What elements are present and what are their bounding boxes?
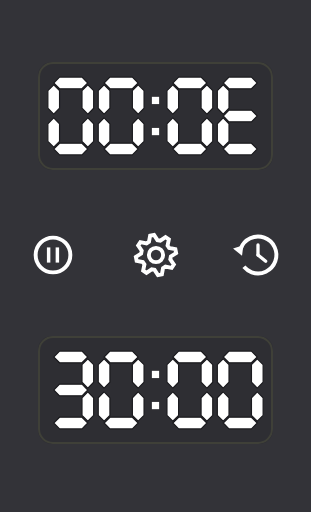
button[interactable]: Reset bbox=[235, 232, 281, 278]
button[interactable]: Pause bbox=[30, 232, 76, 278]
button[interactable]: Settings bbox=[133, 232, 179, 278]
button[interactable] bbox=[38, 62, 273, 170]
button[interactable] bbox=[38, 336, 273, 444]
